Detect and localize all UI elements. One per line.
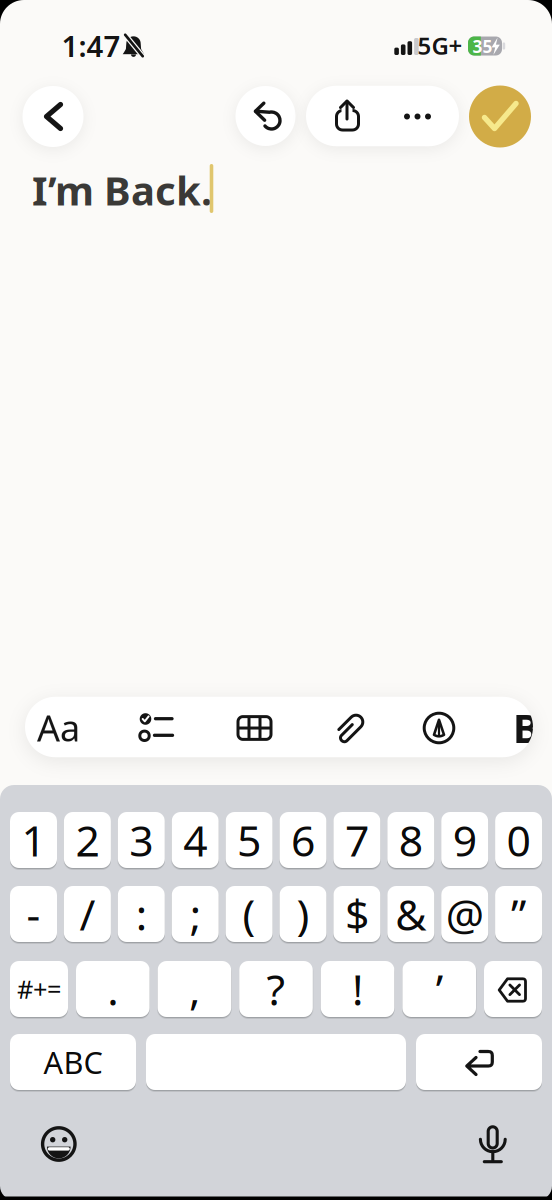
staticText: I’m Back.: [32, 163, 212, 216]
button[interactable]: [146, 1034, 406, 1090]
staticText: Aa: [37, 704, 80, 751]
staticText: 8: [399, 812, 423, 868]
button[interactable]: :: [118, 886, 165, 942]
button[interactable]: 3: [118, 812, 165, 868]
button[interactable]: ?: [239, 961, 313, 1017]
button[interactable]: 4: [172, 812, 219, 868]
button[interactable]: [469, 85, 531, 147]
button[interactable]: ’: [402, 961, 476, 1017]
staticText: 5: [237, 812, 261, 868]
button[interactable]: [317, 86, 377, 146]
button[interactable]: [22, 86, 83, 147]
staticText: B: [513, 701, 540, 754]
button[interactable]: 1: [10, 812, 57, 868]
staticText: -: [26, 886, 40, 942]
staticText: ?: [266, 961, 285, 1017]
button[interactable]: ,: [158, 961, 231, 1017]
button[interactable]: [473, 1121, 513, 1165]
button[interactable]: [397, 106, 437, 126]
staticText: ABC: [43, 1042, 102, 1082]
button[interactable]: .: [76, 961, 150, 1017]
staticText: 35: [472, 35, 492, 58]
button[interactable]: $: [333, 886, 380, 942]
staticText: 1: [21, 812, 45, 868]
staticText: (: [243, 886, 256, 942]
staticText: #+=: [17, 972, 61, 1006]
staticText: 4: [183, 812, 207, 868]
button[interactable]: -: [10, 886, 57, 942]
staticText: 6: [291, 812, 315, 868]
button[interactable]: 8: [387, 812, 434, 868]
button[interactable]: @: [441, 886, 488, 942]
button[interactable]: ;: [172, 886, 219, 942]
button[interactable]: [39, 1124, 79, 1164]
button[interactable]: ): [279, 886, 326, 942]
button[interactable]: [484, 961, 542, 1017]
staticText: ’: [436, 961, 443, 1017]
staticText: $: [345, 886, 369, 942]
staticText: ,: [189, 961, 200, 1017]
staticText: :: [136, 886, 147, 942]
staticText: !: [352, 961, 363, 1017]
staticText: @: [446, 886, 484, 942]
staticText: ): [296, 886, 309, 942]
button[interactable]: B: [511, 705, 541, 749]
staticText: 2: [75, 812, 99, 868]
staticText: .: [107, 961, 118, 1017]
button[interactable]: [232, 705, 276, 749]
button[interactable]: 6: [279, 812, 326, 868]
staticText: /: [79, 886, 95, 942]
staticText: ”: [511, 886, 526, 942]
staticText: &: [395, 886, 426, 942]
button[interactable]: /: [64, 886, 111, 942]
button[interactable]: [417, 706, 461, 750]
button[interactable]: [136, 705, 180, 749]
button[interactable]: #+=: [10, 961, 68, 1017]
button[interactable]: 7: [333, 812, 380, 868]
button[interactable]: [235, 86, 295, 146]
button[interactable]: ”: [495, 886, 542, 942]
button[interactable]: ABC: [10, 1034, 136, 1090]
button[interactable]: [416, 1034, 542, 1090]
staticText: 1:47: [61, 26, 120, 65]
staticText: 5G+: [417, 30, 462, 61]
button[interactable]: (: [226, 886, 273, 942]
staticText: 0: [507, 812, 531, 868]
button[interactable]: 2: [64, 812, 111, 868]
button[interactable]: Aa: [28, 702, 88, 752]
button[interactable]: !: [321, 961, 394, 1017]
staticText: 9: [453, 812, 477, 868]
staticText: 3: [129, 812, 153, 868]
button[interactable]: &: [387, 886, 434, 942]
button[interactable]: 9: [441, 812, 488, 868]
button[interactable]: 0: [495, 812, 542, 868]
staticText: ;: [190, 886, 201, 942]
button[interactable]: [330, 708, 370, 748]
button[interactable]: 5: [226, 812, 273, 868]
staticText: 7: [345, 812, 369, 868]
